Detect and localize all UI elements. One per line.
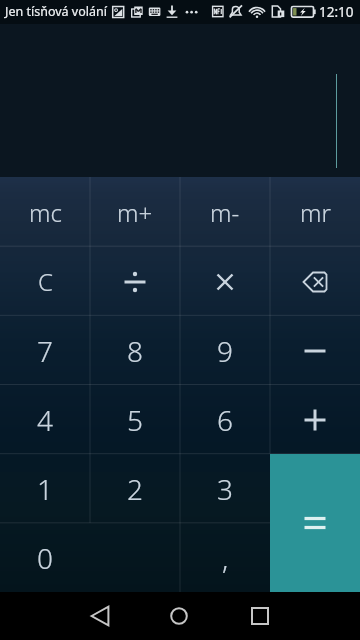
staticText: , [222, 539, 229, 577]
button[interactable]: m+ [90, 177, 180, 247]
button[interactable]: 3 [180, 454, 270, 523]
button[interactable]: Back [76, 592, 124, 640]
staticText: 6 [217, 401, 233, 439]
button[interactable]: Home [155, 592, 203, 640]
button[interactable]: Minus [270, 316, 360, 385]
other: Backspace [295, 262, 335, 302]
button[interactable]: Plus [270, 385, 360, 454]
button[interactable]: , [180, 523, 270, 592]
staticText: 0 [37, 539, 53, 577]
staticText: m+ [117, 196, 153, 229]
button[interactable]: 8 [90, 316, 180, 385]
staticText: 3 [217, 470, 233, 508]
other: Divide [115, 262, 155, 302]
button[interactable]: 7 [0, 316, 90, 385]
staticText: m- [210, 196, 240, 229]
other: Minus [295, 331, 335, 371]
button[interactable]: Recent apps [236, 592, 284, 640]
staticText: mr [300, 196, 331, 229]
button[interactable]: C [0, 247, 90, 316]
button[interactable]: Multiply [180, 247, 270, 316]
other: Plus [295, 400, 335, 440]
staticText: C [38, 265, 53, 298]
button[interactable]: 9 [180, 316, 270, 385]
button[interactable]: Divide [90, 247, 180, 316]
button[interactable]: mc [0, 177, 90, 247]
staticText: Jen tísňová volání [5, 3, 107, 20]
button[interactable]: Backspace [270, 247, 360, 316]
button[interactable]: m- [180, 177, 270, 247]
button[interactable]: 2 [90, 454, 180, 523]
staticText: 12:10 [319, 3, 354, 21]
button[interactable]: 6 [180, 385, 270, 454]
staticText: 2 [127, 470, 143, 508]
staticText: mc [29, 196, 62, 229]
staticText: 9 [217, 332, 233, 370]
staticText: 4 [37, 401, 53, 439]
other: Multiply [205, 262, 245, 302]
staticText: 1 [37, 470, 53, 508]
button[interactable]: 5 [90, 385, 180, 454]
staticText: 8 [127, 332, 143, 370]
button[interactable]: Equals [270, 454, 360, 592]
button[interactable]: 0 [0, 523, 90, 592]
button[interactable]: 1 [0, 454, 90, 523]
button[interactable]: 4 [0, 385, 90, 454]
staticText: 7 [37, 332, 53, 370]
button[interactable]: mr [270, 177, 360, 247]
staticText: 5 [127, 401, 143, 439]
